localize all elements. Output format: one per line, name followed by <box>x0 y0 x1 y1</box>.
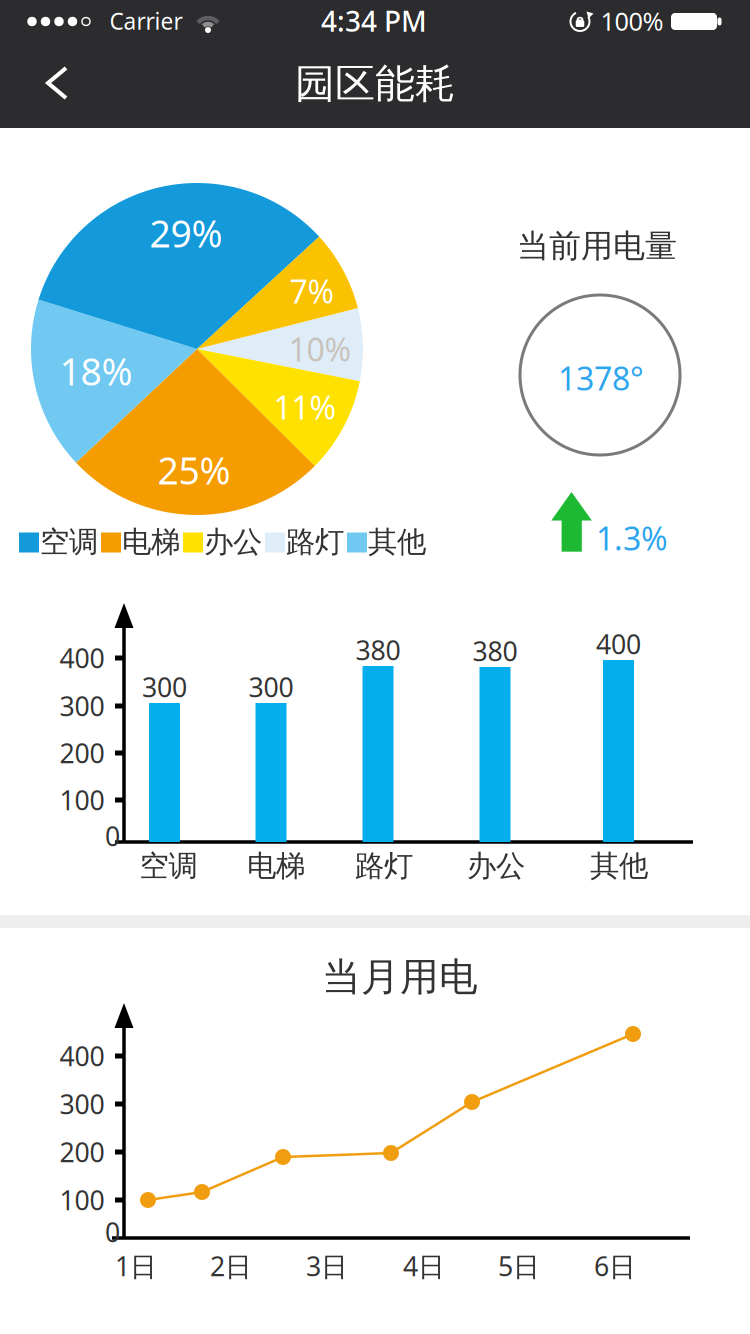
staticText: 办公 <box>204 524 262 560</box>
staticText: 路灯 <box>286 524 344 560</box>
staticText: 400 <box>59 640 104 676</box>
staticText: 200 <box>59 735 104 771</box>
staticText: 100 <box>59 782 104 818</box>
staticText: 2日 <box>210 1248 252 1284</box>
staticText: 25% <box>157 445 230 495</box>
staticText: 空调 <box>40 524 98 560</box>
staticText: 100% <box>600 4 663 38</box>
staticText: 当前用电量 <box>517 226 677 266</box>
staticText: 300 <box>59 688 104 724</box>
button[interactable]: Back <box>14 58 102 108</box>
staticText: 园区能耗 <box>295 59 455 108</box>
staticText: 300 <box>248 669 293 705</box>
staticText: 0 <box>105 1214 120 1250</box>
staticText: 18% <box>59 346 132 396</box>
staticText: 办公 <box>467 848 525 884</box>
staticText: 0 <box>105 818 120 854</box>
staticText: 6日 <box>594 1248 636 1284</box>
staticText: 4日 <box>403 1248 445 1284</box>
staticText: 400 <box>596 626 641 662</box>
staticText: 电梯 <box>247 848 305 884</box>
staticText: 电梯 <box>122 524 180 560</box>
staticText: 5日 <box>498 1248 540 1284</box>
staticText: 380 <box>355 632 400 668</box>
staticText: 3日 <box>306 1248 348 1284</box>
staticText: 空调 <box>139 848 197 884</box>
staticText: 路灯 <box>355 848 413 884</box>
staticText: 300 <box>59 1086 104 1122</box>
staticText: 1日 <box>115 1248 157 1284</box>
staticText: 其他 <box>590 848 648 884</box>
staticText: 380 <box>472 633 517 669</box>
staticText: 4:34 PM <box>321 2 427 40</box>
staticText: 7% <box>289 270 334 312</box>
staticText: 1378° <box>558 357 644 399</box>
staticText: 29% <box>149 208 222 258</box>
staticText: 400 <box>59 1038 104 1074</box>
staticText: Carrier <box>109 6 182 36</box>
staticText: 100 <box>59 1182 104 1218</box>
staticText: 当月用电 <box>322 953 478 1001</box>
staticText: 11% <box>273 386 336 428</box>
staticText: 200 <box>59 1134 104 1170</box>
staticText: 300 <box>142 669 187 705</box>
staticText: 1.3% <box>596 517 668 559</box>
staticText: 其他 <box>368 524 426 560</box>
staticText: 10% <box>288 328 351 370</box>
